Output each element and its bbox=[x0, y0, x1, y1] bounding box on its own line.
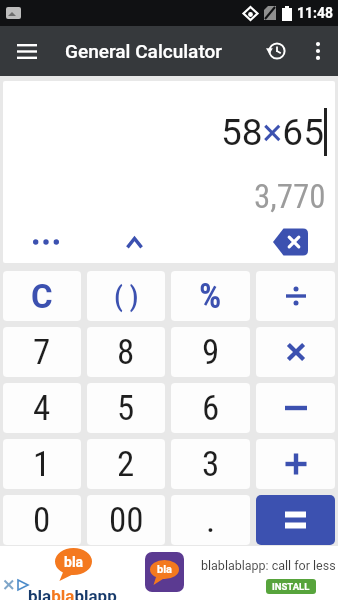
staticText: General Calculator bbox=[65, 40, 222, 62]
staticText: 0 bbox=[33, 500, 51, 541]
staticText: 5 bbox=[117, 388, 135, 429]
staticText: 11:48 bbox=[297, 5, 334, 21]
staticText: 3,770 bbox=[254, 177, 326, 216]
button[interactable]: ( ) bbox=[87, 271, 165, 321]
button[interactable]: INSTALL bbox=[266, 579, 316, 594]
button[interactable]: . bbox=[171, 495, 250, 545]
button[interactable]: C bbox=[3, 271, 81, 321]
staticText: 58×65 bbox=[221, 111, 324, 154]
staticText: 3 bbox=[202, 444, 220, 485]
button[interactable] bbox=[254, 29, 298, 73]
button[interactable]: 6 bbox=[171, 383, 250, 433]
button[interactable] bbox=[256, 271, 335, 321]
button[interactable]: bla bbox=[145, 552, 184, 592]
button[interactable]: 7 bbox=[3, 327, 81, 377]
staticText: 4 bbox=[33, 388, 51, 429]
button[interactable] bbox=[256, 495, 335, 545]
staticText: blablablapp: call for less bbox=[201, 558, 336, 573]
staticText: % bbox=[199, 276, 222, 317]
button[interactable]: 8 bbox=[87, 327, 165, 377]
staticText: . bbox=[206, 500, 216, 541]
staticText: 8 bbox=[117, 332, 135, 373]
button[interactable]: 1 bbox=[3, 439, 81, 489]
button[interactable]: 3 bbox=[171, 439, 250, 489]
button[interactable]: 5 bbox=[87, 383, 165, 433]
button[interactable]: % bbox=[171, 271, 250, 321]
button[interactable] bbox=[0, 26, 54, 76]
button[interactable]: 0 bbox=[3, 495, 81, 545]
staticText: 7 bbox=[33, 332, 51, 373]
button[interactable] bbox=[119, 229, 149, 255]
button[interactable] bbox=[256, 383, 335, 433]
staticText: bla bbox=[64, 554, 84, 570]
staticText: 2 bbox=[117, 444, 135, 485]
button[interactable]: 00 bbox=[87, 495, 165, 545]
button[interactable] bbox=[272, 228, 309, 256]
button[interactable]: 2 bbox=[87, 439, 165, 489]
staticText: C bbox=[31, 277, 53, 316]
staticText: ( ) bbox=[114, 280, 139, 313]
staticText: bla bbox=[157, 563, 173, 576]
button[interactable] bbox=[256, 439, 335, 489]
button[interactable] bbox=[256, 327, 335, 377]
button[interactable]: 4 bbox=[3, 383, 81, 433]
staticText: 00 bbox=[109, 500, 144, 541]
staticText: 6 bbox=[202, 388, 220, 429]
staticText: 9 bbox=[202, 332, 220, 373]
button[interactable]: 9 bbox=[171, 327, 250, 377]
button[interactable] bbox=[298, 31, 338, 71]
staticText: blablablapp bbox=[28, 586, 117, 600]
staticText: 1 bbox=[33, 444, 51, 485]
staticText: INSTALL bbox=[272, 581, 310, 592]
button[interactable] bbox=[29, 229, 63, 255]
